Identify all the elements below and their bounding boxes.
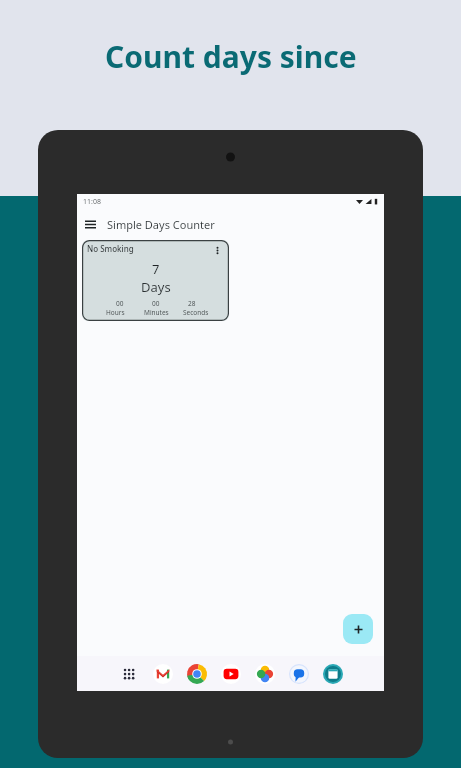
staticText: Seconds [183,308,209,317]
button[interactable]: Photos [248,657,282,691]
staticText: 00 [116,299,124,308]
button[interactable]: Menu [77,211,103,237]
button[interactable]: Chrome [180,657,214,691]
staticText: Simple Days Counter [107,217,215,232]
button[interactable]: Calendar [316,657,350,691]
staticText: No Smoking [87,243,134,254]
button[interactable]: Add counter [343,614,373,644]
button[interactable]: More options [210,243,225,258]
staticText: Hours [106,308,125,317]
staticText: 7 [152,260,160,278]
button[interactable]: No Smoking [82,240,229,321]
staticText: 28 [188,299,196,308]
button[interactable]: All apps [112,657,146,691]
staticText: Minutes [144,308,169,317]
button[interactable]: Messages [282,657,316,691]
button[interactable]: YouTube [214,657,248,691]
staticText: Count days since [105,36,357,77]
staticText: 11:08 [83,197,101,207]
button[interactable]: Gmail [146,657,180,691]
staticText: 00 [152,299,160,308]
staticText: Days [141,278,171,296]
